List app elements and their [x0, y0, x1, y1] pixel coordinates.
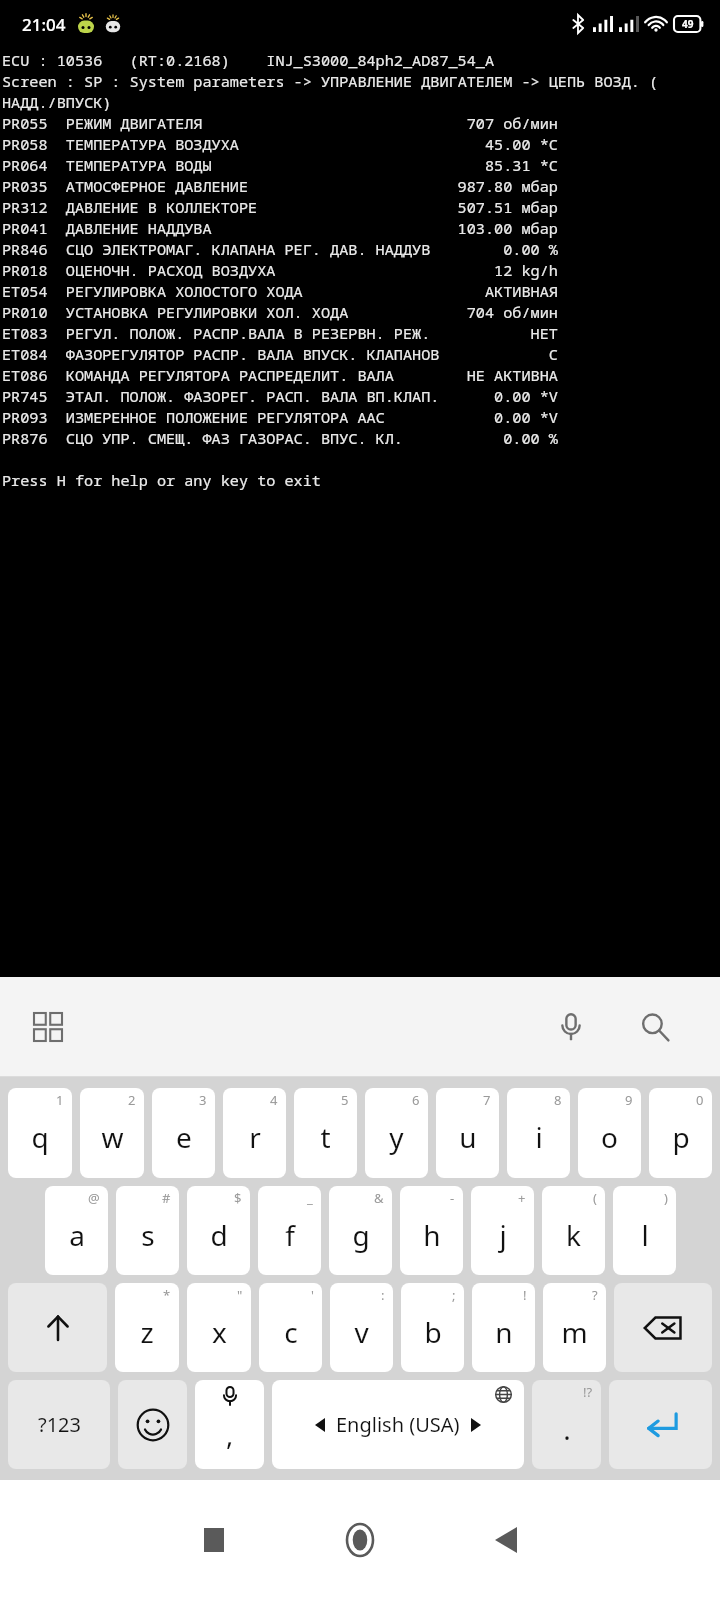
- staticText: c: [284, 1313, 298, 1351]
- button[interactable]: u: [436, 1088, 499, 1178]
- button[interactable]: d: [187, 1186, 250, 1275]
- button[interactable]: Backspace: [614, 1283, 712, 1372]
- button[interactable]: a: [45, 1186, 108, 1275]
- staticText: .: [563, 1410, 571, 1448]
- button[interactable]: f: [258, 1186, 321, 1275]
- button[interactable]: z: [115, 1283, 179, 1372]
- staticText: PR018 ОЦЕНОЧН. РАСХОД ВОЗДУХА 12 kg/h: [2, 260, 558, 281]
- button[interactable]: k: [542, 1186, 605, 1275]
- staticText: ECU : 10536 (RT:0.2168) INJ_S3000_84ph2_…: [2, 50, 495, 71]
- button[interactable]: .: [532, 1380, 601, 1469]
- staticText: -: [450, 1189, 455, 1207]
- staticText: b: [424, 1313, 442, 1351]
- button[interactable]: c: [259, 1283, 322, 1372]
- button[interactable]: Enter: [609, 1380, 712, 1469]
- staticText: English (USA): [336, 1411, 460, 1438]
- button[interactable]: l: [613, 1186, 676, 1275]
- staticText: _: [307, 1189, 313, 1207]
- staticText: m: [561, 1313, 588, 1351]
- staticText: t: [320, 1118, 331, 1156]
- staticText: :: [381, 1286, 385, 1304]
- staticText: ET083 РЕГУЛ. ПОЛОЖ. РАСПР.ВАЛА В РЕЗЕРВН…: [2, 323, 558, 344]
- button[interactable]: x: [187, 1283, 251, 1372]
- staticText: PR745 ЭТАЛ. ПОЛОЖ. ФАЗОРЕГ. РАСП. ВАЛА В…: [2, 386, 558, 407]
- button[interactable]: b: [401, 1283, 464, 1372]
- staticText: y: [389, 1118, 404, 1156]
- staticText: 21:04: [22, 13, 66, 36]
- staticText: &: [374, 1189, 384, 1207]
- staticText: u: [459, 1118, 477, 1156]
- staticText: #: [162, 1189, 171, 1207]
- button[interactable]: ?123: [8, 1380, 110, 1469]
- staticText: a: [69, 1216, 85, 1254]
- button[interactable]: r: [223, 1088, 286, 1178]
- staticText: ": [237, 1286, 243, 1304]
- staticText: n: [495, 1313, 513, 1351]
- button[interactable]: p: [649, 1088, 712, 1178]
- staticText: s: [141, 1216, 155, 1254]
- staticText: +: [518, 1189, 526, 1207]
- button[interactable]: Comma: [195, 1380, 264, 1469]
- button[interactable]: q: [8, 1088, 72, 1178]
- staticText: h: [423, 1216, 441, 1254]
- staticText: 4: [270, 1091, 278, 1109]
- staticText: l: [641, 1216, 649, 1254]
- staticText: PR035 АТМОСФЕРНОЕ ДАВЛЕНИЕ 987.80 мбар: [2, 176, 558, 197]
- staticText: 8: [554, 1091, 562, 1109]
- staticText: ): [664, 1189, 668, 1207]
- button[interactable]: y: [365, 1088, 428, 1178]
- staticText: i: [535, 1118, 543, 1156]
- staticText: PR055 РЕЖИМ ДВИГАТЕЛЯ 707 об/мин: [2, 113, 558, 134]
- button[interactable]: Search: [624, 996, 686, 1058]
- button[interactable]: Space: [272, 1380, 524, 1469]
- button[interactable]: o: [578, 1088, 641, 1178]
- staticText: 3: [199, 1091, 207, 1109]
- staticText: PR846 СЦО ЭЛЕКТРОМАГ. КЛАПАНА РЕГ. ДАВ. …: [2, 239, 558, 260]
- staticText: PR010 УСТАНОВКА РЕГУЛИРОВКИ ХОЛ. ХОДА 70…: [2, 302, 558, 323]
- button[interactable]: Keyboard options: [18, 997, 78, 1057]
- button[interactable]: m: [543, 1283, 606, 1372]
- button[interactable]: Shift: [8, 1283, 107, 1372]
- button[interactable]: Recent apps: [166, 1492, 262, 1588]
- staticText: @: [88, 1189, 100, 1207]
- staticText: ?: [592, 1286, 598, 1304]
- staticText: ,: [226, 1416, 234, 1453]
- staticText: PR041 ДАВЛЕНИЕ НАДДУВА 103.00 мбар: [2, 218, 558, 239]
- staticText: 0: [696, 1091, 704, 1109]
- staticText: PR064 ТЕМПЕРАТУРА ВОДЫ 85.31 *C: [2, 155, 558, 176]
- staticText: j: [499, 1216, 507, 1254]
- staticText: ': [311, 1286, 314, 1304]
- staticText: 6: [412, 1091, 420, 1109]
- button[interactable]: g: [329, 1186, 392, 1275]
- button[interactable]: j: [471, 1186, 534, 1275]
- staticText: z: [140, 1313, 154, 1351]
- staticText: k: [566, 1216, 581, 1254]
- button[interactable]: Back: [458, 1492, 554, 1588]
- button[interactable]: Emoji: [118, 1380, 187, 1469]
- button[interactable]: t: [294, 1088, 357, 1178]
- staticText: v: [354, 1313, 369, 1351]
- button[interactable]: i: [507, 1088, 570, 1178]
- staticText: Press H for help or any key to exit: [2, 470, 321, 491]
- staticText: Screen : SP : System parameters -> УПРАВ…: [2, 71, 659, 92]
- button[interactable]: e: [152, 1088, 215, 1178]
- button[interactable]: h: [400, 1186, 463, 1275]
- staticText: $: [234, 1189, 242, 1207]
- staticText: o: [601, 1118, 618, 1156]
- staticText: q: [31, 1118, 49, 1156]
- staticText: x: [212, 1313, 227, 1351]
- staticText: !: [523, 1286, 527, 1304]
- button[interactable]: Home: [312, 1492, 408, 1588]
- button[interactable]: v: [330, 1283, 393, 1372]
- button[interactable]: w: [80, 1088, 144, 1178]
- button[interactable]: s: [116, 1186, 179, 1275]
- staticText: e: [176, 1118, 192, 1156]
- staticText: w: [101, 1118, 124, 1156]
- staticText: 5: [341, 1091, 349, 1109]
- staticText: 49: [682, 17, 694, 31]
- button[interactable]: n: [472, 1283, 535, 1372]
- staticText: PR093 ИЗМЕРЕННОЕ ПОЛОЖЕНИЕ РЕГУЛЯТОРА АА…: [2, 407, 558, 428]
- staticText: ;: [452, 1286, 456, 1304]
- button[interactable]: Voice input: [540, 996, 602, 1058]
- staticText: r: [249, 1118, 261, 1156]
